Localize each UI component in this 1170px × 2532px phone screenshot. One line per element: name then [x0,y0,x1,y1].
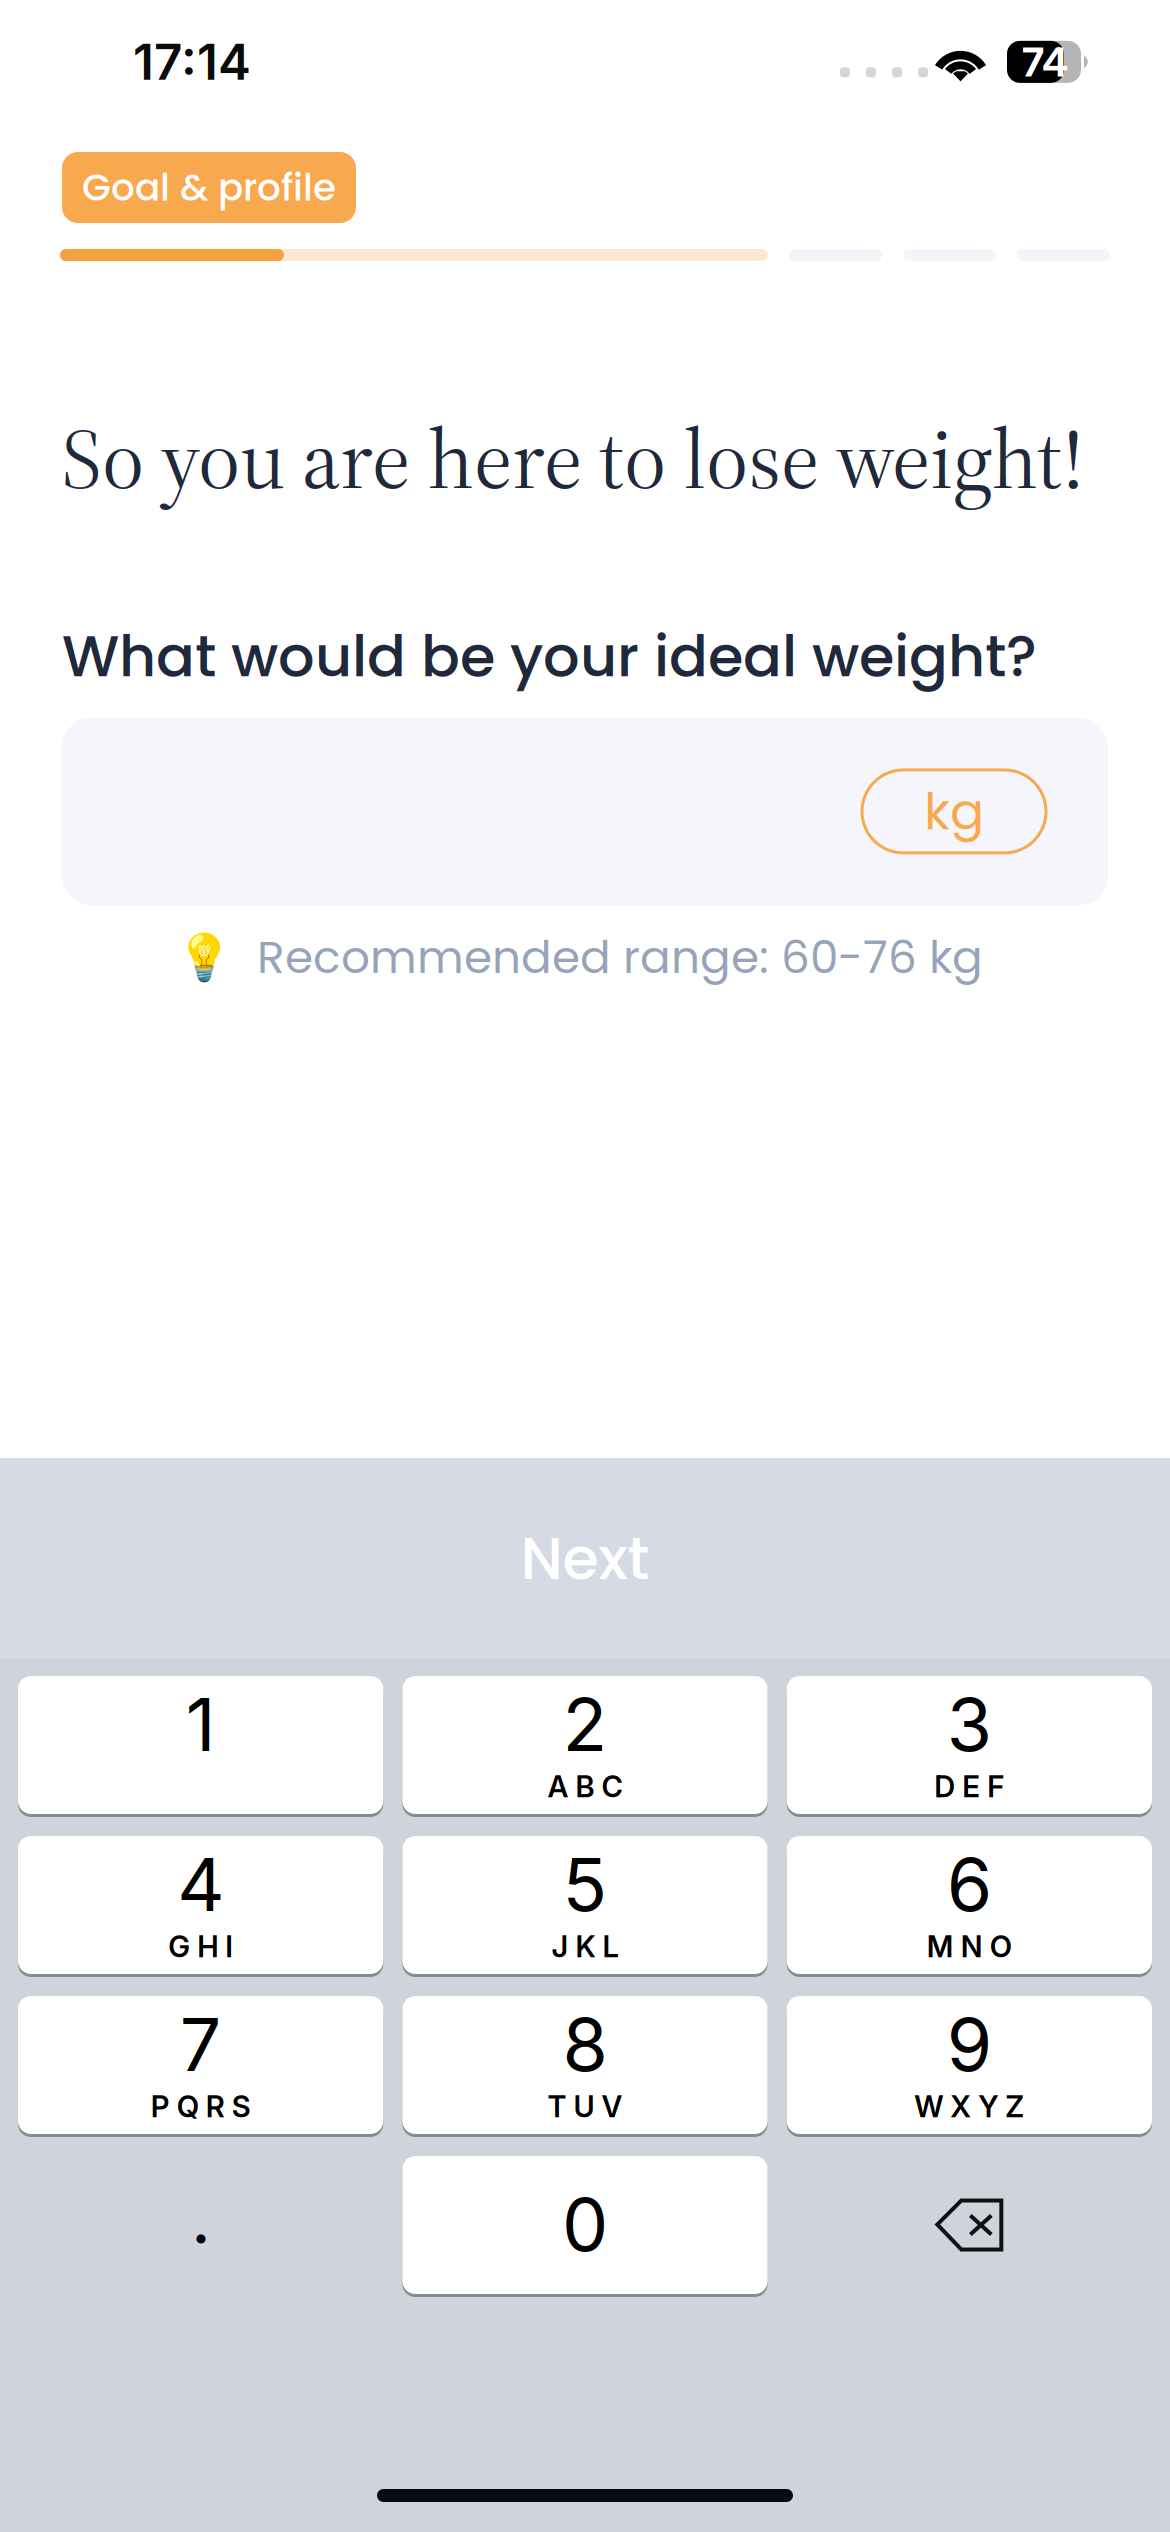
staticText: 74 [1022,38,1068,86]
button[interactable]: Goal & profile [62,152,356,223]
button[interactable]: 7 [18,1996,383,2134]
staticText: T U V [547,2089,622,2124]
staticText: 8 [562,2000,607,2089]
staticText: Next [520,1517,649,1599]
button[interactable]: 4 [18,1836,383,1974]
staticText: W X Y Z [914,2089,1024,2124]
button[interactable]: 2 [402,1676,768,1814]
staticText: P Q R S [151,2089,251,2124]
button[interactable]: 0 [402,2156,768,2294]
staticText: . [189,2159,213,2263]
staticText: 6 [947,1840,992,1929]
staticText: 2 [562,1680,607,1769]
button[interactable]: 5 [402,1836,768,1974]
staticText: G H I [168,1929,233,1964]
button[interactable]: 3 [787,1676,1152,1814]
staticText: 7 [180,2000,222,2089]
staticText: 1 [186,1680,216,1769]
button[interactable]: Delete [787,2156,1152,2294]
staticText: Goal & profile [82,161,336,214]
button[interactable]: 9 [787,1996,1152,2134]
button[interactable]: Decimal point [18,2156,383,2294]
staticText: 💡 [176,931,232,984]
staticText: 17:14 [133,32,251,92]
staticText: J K L [551,1929,618,1964]
staticText: 9 [947,2000,992,2089]
button[interactable]: 1 [18,1676,383,1814]
staticText: kg [924,776,984,847]
staticText: What would be your ideal weight? [62,616,1037,696]
staticText: 0 [562,2180,608,2269]
staticText: So you are here to lose weight! [62,401,1085,516]
staticText: 5 [562,1840,607,1929]
staticText: 4 [177,1840,224,1929]
staticText: M N O [927,1929,1012,1964]
button[interactable]: Next [0,1458,1170,1659]
button[interactable]: 8 [402,1996,768,2134]
staticText: A B C [547,1769,622,1804]
staticText: D E F [934,1769,1004,1804]
staticText: Recommended range: 60-76 kg [257,925,983,989]
staticText: 3 [947,1680,992,1769]
button[interactable]: 6 [787,1836,1152,1974]
